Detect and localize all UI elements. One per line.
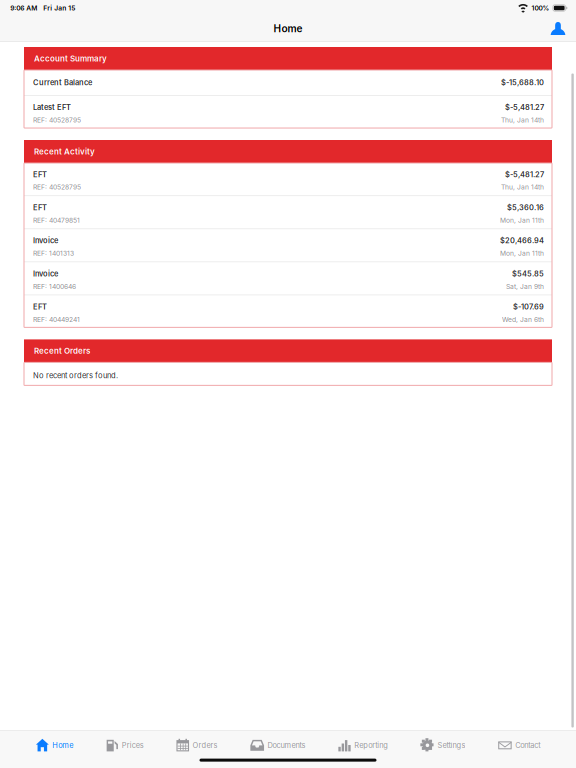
staticText: Account Summary	[34, 54, 107, 63]
button[interactable]: Settings	[421, 738, 465, 752]
staticText: REF: 1400646	[33, 282, 76, 290]
staticText: REF: 1401313	[33, 249, 74, 257]
staticText: Recent Activity	[34, 147, 95, 156]
staticText: REF: 40479851	[33, 216, 80, 224]
staticText: Wed, Jan 6th	[502, 315, 544, 324]
staticText: Documents	[268, 741, 306, 750]
button[interactable]: Account	[545, 16, 571, 41]
staticText: Fri Jan 15	[43, 4, 75, 12]
staticText: EFT	[33, 170, 47, 179]
staticText: $-15,688.10	[501, 78, 544, 87]
staticText: Mon, Jan 11th	[500, 216, 544, 224]
button[interactable]: Documents	[250, 738, 305, 752]
staticText: REF: 40528795	[33, 116, 81, 124]
staticText: Orders	[192, 741, 217, 750]
staticText: Latest EFT	[33, 103, 71, 112]
staticText: 9:06 AM	[10, 4, 37, 12]
staticText: Sat, Jan 9th	[506, 282, 544, 290]
staticText: $20,466.94	[500, 236, 544, 245]
button[interactable]: Home	[36, 738, 73, 752]
staticText: No recent orders found.	[33, 371, 118, 380]
staticText: Home	[52, 741, 73, 750]
staticText: Invoice	[33, 236, 58, 245]
button[interactable]: Reporting	[338, 738, 388, 752]
staticText: Settings	[437, 741, 465, 750]
staticText: REF: 40449241	[33, 315, 80, 324]
staticText: Current Balance	[33, 78, 92, 87]
button[interactable]: Contact	[498, 738, 540, 752]
staticText: Reporting	[354, 741, 388, 750]
staticText: Thu, Jan 14th	[501, 116, 544, 124]
staticText: EFT	[33, 203, 47, 212]
button[interactable]: Prices	[106, 738, 144, 752]
staticText: $545.85	[512, 269, 544, 278]
staticText: 100%	[532, 4, 550, 12]
button[interactable]: Orders	[176, 738, 217, 752]
staticText: REF: 40528795	[33, 183, 81, 191]
staticText: $-5,481.27	[505, 170, 544, 179]
staticText: $-107.69	[513, 302, 544, 311]
staticText: Home	[273, 22, 302, 35]
staticText: $-5,481.27	[505, 103, 544, 112]
staticText: Prices	[122, 741, 144, 750]
staticText: Invoice	[33, 269, 58, 278]
staticText: Thu, Jan 14th	[501, 183, 544, 191]
staticText: EFT	[33, 302, 47, 311]
staticText: Mon, Jan 11th	[500, 249, 544, 257]
staticText: Recent Orders	[34, 346, 90, 356]
staticText: Contact	[515, 741, 540, 750]
staticText: $5,360.16	[507, 203, 544, 212]
